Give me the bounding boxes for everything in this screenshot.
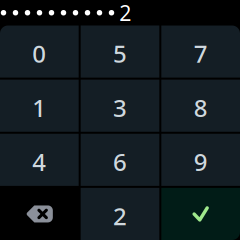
staticText: 2 [119, 0, 131, 27]
button[interactable]: Confirm [161, 188, 240, 240]
button[interactable]: 2 [81, 188, 159, 240]
button[interactable]: 0 [0, 25, 79, 78]
button[interactable]: 6 [81, 134, 159, 186]
staticText: 9 [194, 146, 208, 178]
staticText: 6 [113, 146, 127, 178]
button[interactable]: 1 [0, 80, 79, 132]
staticText: 1 [32, 92, 46, 124]
staticText: 8 [194, 92, 208, 124]
staticText: 7 [194, 38, 208, 69]
button[interactable]: 8 [161, 80, 240, 132]
button[interactable]: 7 [161, 25, 240, 78]
button[interactable]: 9 [161, 134, 240, 186]
staticText: 0 [32, 38, 46, 69]
staticText: 4 [32, 146, 46, 178]
button[interactable]: 3 [81, 80, 159, 132]
staticText: 5 [113, 38, 127, 69]
staticText: 2 [113, 200, 127, 232]
button[interactable]: 4 [0, 134, 79, 186]
button[interactable]: Delete [0, 188, 79, 240]
button[interactable]: 5 [81, 25, 159, 78]
staticText: 3 [113, 92, 127, 124]
